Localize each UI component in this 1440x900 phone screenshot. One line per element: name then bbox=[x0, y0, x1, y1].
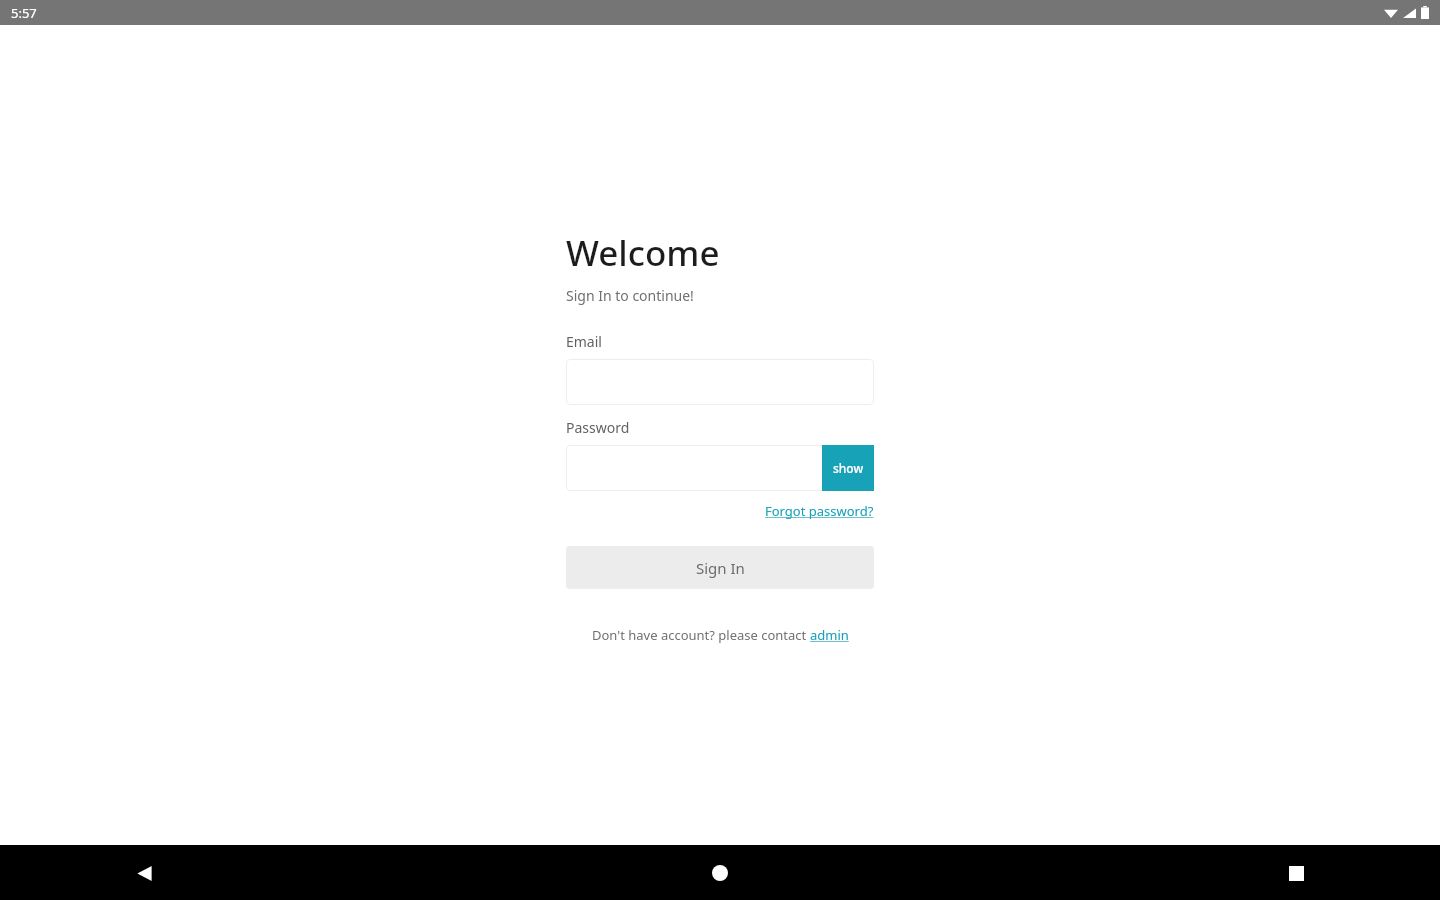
staticText: Email bbox=[566, 332, 602, 351]
button[interactable]: Sign In bbox=[566, 546, 874, 589]
staticText: show bbox=[833, 460, 864, 476]
button[interactable] bbox=[566, 359, 874, 405]
button[interactable]: Back bbox=[120, 849, 168, 897]
button[interactable]: show bbox=[822, 445, 874, 491]
button[interactable]: Home bbox=[696, 849, 744, 897]
button[interactable]: admin bbox=[810, 626, 849, 644]
staticText: Forgot password? bbox=[765, 502, 874, 520]
staticText: 5:57 bbox=[11, 4, 37, 22]
staticText: admin bbox=[810, 626, 849, 644]
staticText: Sign In bbox=[696, 558, 745, 578]
staticText: Sign In to continue! bbox=[566, 286, 694, 305]
staticText: Welcome bbox=[566, 229, 720, 277]
button[interactable]: Forgot password? bbox=[765, 502, 874, 520]
staticText: Password bbox=[566, 418, 630, 437]
button[interactable] bbox=[566, 445, 874, 491]
button[interactable]: Recent apps bbox=[1272, 849, 1320, 897]
staticText: Don't have account? please contact bbox=[592, 626, 810, 644]
